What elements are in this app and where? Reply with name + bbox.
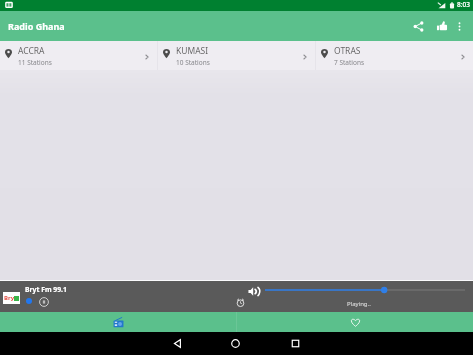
button[interactable]: Home (221, 332, 250, 355)
staticText: Radio Ghana (8, 20, 65, 32)
button[interactable]: Like (430, 11, 453, 41)
button[interactable]: Radio (0, 312, 236, 332)
button[interactable]: Sleep timer (236, 298, 245, 307)
staticText: 11 Stations (18, 58, 52, 67)
staticText: 10 Stations (176, 58, 210, 67)
staticText: Playing.. (347, 300, 371, 308)
button[interactable]: ACCRA (0, 41, 157, 70)
button[interactable]: Back (163, 332, 192, 355)
staticText: 7 Stations (334, 58, 365, 67)
staticText: Bryt Fm 99.1 (25, 285, 67, 294)
staticText: KUMASI (176, 45, 209, 57)
button[interactable]: Pause (39, 297, 49, 307)
button[interactable]: OTRAS (316, 41, 473, 70)
staticText: ACCRA (18, 45, 45, 57)
staticText: Bry (4, 294, 15, 302)
staticText: OTRAS (334, 45, 361, 57)
button[interactable]: Recents (281, 332, 310, 355)
staticText: 8:03 (457, 0, 470, 9)
button[interactable]: Favourites (237, 312, 473, 332)
button[interactable]: KUMASI (158, 41, 315, 70)
button[interactable]: Share (407, 11, 430, 41)
button[interactable]: More options (449, 11, 469, 41)
